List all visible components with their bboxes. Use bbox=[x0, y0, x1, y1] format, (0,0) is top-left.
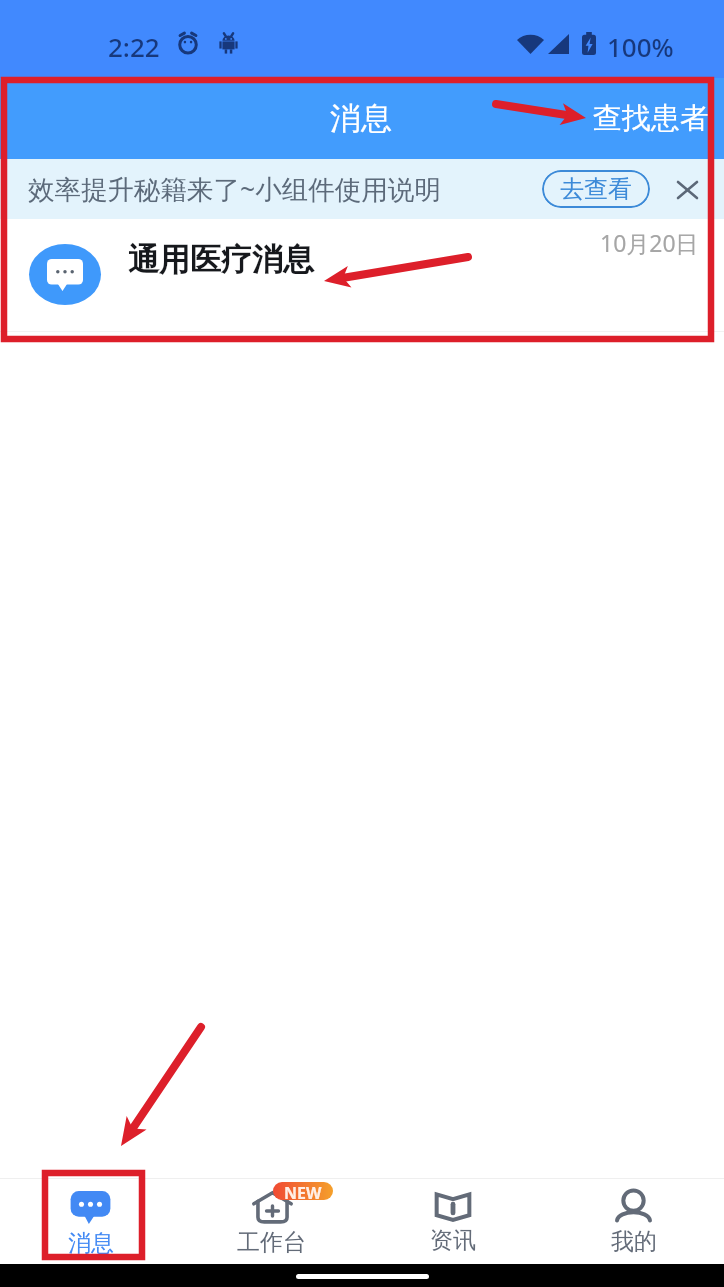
staticText: 工作台 bbox=[237, 1228, 306, 1256]
staticText: 资讯 bbox=[430, 1226, 476, 1255]
staticText: 消息 bbox=[68, 1229, 114, 1256]
staticText: 通用医疗消息 bbox=[128, 240, 314, 279]
staticText: 我的 bbox=[611, 1227, 657, 1256]
staticText: 消息 bbox=[330, 99, 392, 138]
staticText: 2:22 bbox=[108, 29, 160, 64]
button[interactable]: 通用医疗消息 bbox=[0, 219, 724, 332]
staticText: 10月20日 bbox=[600, 227, 699, 258]
button[interactable]: 去查看 bbox=[542, 170, 650, 208]
staticText: 去查看 bbox=[560, 174, 632, 204]
staticText: 效率提升秘籍来了~小组件使用说明 bbox=[28, 171, 441, 207]
staticText: 100% bbox=[607, 29, 674, 64]
button[interactable]: 我的 bbox=[543, 1179, 724, 1264]
button[interactable]: 消息 bbox=[0, 1179, 181, 1264]
button[interactable]: Close banner bbox=[672, 172, 706, 206]
button[interactable]: 查找患者 bbox=[573, 86, 724, 151]
staticText: NEW bbox=[284, 1182, 322, 1200]
button[interactable]: NEW bbox=[181, 1179, 362, 1264]
button[interactable]: 资讯 bbox=[362, 1180, 543, 1263]
staticText: 查找患者 bbox=[593, 100, 709, 137]
